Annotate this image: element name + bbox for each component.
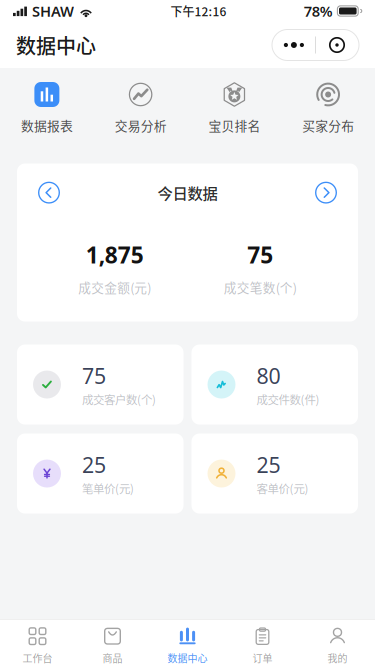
staticText: 75: [247, 240, 273, 270]
button[interactable]: 工作台: [0, 620, 75, 665]
button[interactable]: 我的: [300, 620, 375, 665]
staticText: 数据中心: [16, 30, 96, 59]
button[interactable]: 80: [191, 344, 358, 424]
staticText: 订单: [252, 651, 272, 665]
button[interactable]: Previous day: [38, 182, 60, 204]
staticText: 80: [256, 362, 280, 390]
staticText: 买家分布: [302, 116, 354, 134]
staticText: 成交客户数(个): [82, 391, 156, 407]
button[interactable]: More: [273, 29, 315, 60]
staticText: 数据报表: [21, 116, 73, 134]
button[interactable]: 宝贝排名: [187, 82, 281, 134]
button[interactable]: 订单: [225, 620, 300, 665]
staticText: 75: [82, 362, 106, 390]
button[interactable]: 25: [191, 433, 358, 513]
staticText: 成交件数(件): [256, 391, 319, 407]
button[interactable]: Next day: [315, 182, 337, 204]
staticText: 笔单价(元): [82, 480, 134, 496]
staticText: 成交金额(元): [78, 278, 151, 296]
staticText: 数据中心: [167, 651, 207, 665]
staticText: 下午12:16: [170, 2, 226, 20]
button[interactable]: 数据报表: [0, 82, 94, 134]
staticText: 78%: [304, 1, 333, 21]
button[interactable]: 数据中心: [150, 620, 225, 665]
button[interactable]: Close: [316, 29, 358, 60]
button[interactable]: 商品: [75, 620, 150, 665]
staticText: 交易分析: [115, 116, 167, 134]
button[interactable]: 75: [17, 344, 183, 424]
staticText: SHAW: [32, 1, 74, 21]
staticText: 我的: [327, 651, 347, 665]
staticText: 客单价(元): [256, 480, 308, 496]
staticText: 成交笔数(个): [224, 278, 297, 296]
staticText: 今日数据: [157, 181, 217, 204]
staticText: 25: [82, 451, 106, 479]
staticText: 1,875: [86, 240, 144, 270]
button[interactable]: 25: [17, 433, 183, 513]
button[interactable]: 买家分布: [281, 82, 375, 134]
staticText: 商品: [102, 651, 122, 665]
staticText: 宝贝排名: [208, 116, 260, 134]
button[interactable]: 交易分析: [94, 82, 188, 134]
staticText: 25: [256, 451, 280, 479]
staticText: 工作台: [22, 651, 52, 665]
